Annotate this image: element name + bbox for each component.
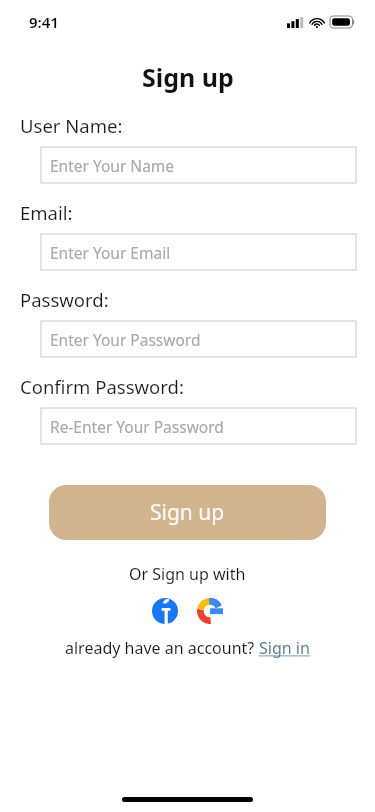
staticText: Enter Your Name (50, 155, 175, 176)
button[interactable]: Re-Enter Your Password (41, 408, 356, 444)
staticText: Enter Your Password (50, 329, 201, 350)
button[interactable]: Sign up with Facebook (152, 598, 178, 624)
button[interactable]: Sign up (49, 485, 326, 540)
staticText: Sign up (150, 498, 225, 527)
button[interactable]: Sign up with Google (197, 598, 223, 624)
staticText: Confirm Password: (20, 374, 184, 399)
staticText: 9:41 (29, 12, 59, 32)
staticText: Password: (20, 287, 109, 312)
staticText: Sign in (259, 637, 310, 659)
button[interactable]: Enter Your Password (41, 321, 356, 357)
button[interactable]: Enter Your Email (41, 234, 356, 270)
staticText: Enter Your Email (50, 242, 171, 263)
button[interactable]: Sign in (259, 637, 310, 659)
staticText: User Name: (20, 113, 123, 138)
staticText: Sign up (142, 60, 234, 94)
button[interactable]: Enter Your Name (41, 147, 356, 183)
staticText: Email: (20, 200, 73, 225)
staticText: already have an account? (65, 637, 259, 659)
staticText: Re-Enter Your Password (50, 416, 224, 437)
staticText: Or Sign up with (129, 563, 246, 585)
